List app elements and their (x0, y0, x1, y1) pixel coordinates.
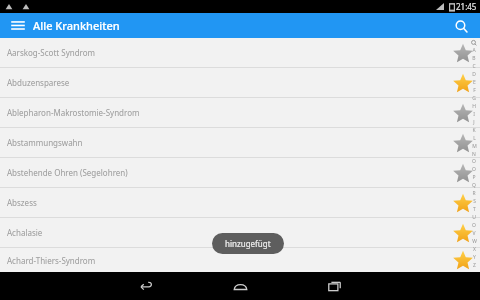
staticText: K (472, 127, 476, 134)
staticText: S (473, 198, 476, 205)
staticText: O (472, 158, 476, 165)
button[interactable]: Favorite (446, 99, 480, 129)
staticText: O (472, 222, 476, 229)
button[interactable]: Abduzensparese (0, 68, 480, 97)
staticText: F (473, 87, 476, 94)
staticText: T (473, 206, 476, 213)
staticText: Abszess (7, 197, 37, 208)
button[interactable]: Favorite (446, 39, 480, 69)
staticText: Ablepharon-Makrostomie-Syndrom (7, 107, 140, 118)
staticText: X (473, 246, 476, 253)
staticText: Abstammungswahn (7, 137, 83, 148)
button[interactable]: Favorite (446, 129, 480, 159)
staticText: J (473, 119, 475, 126)
button[interactable]: Back (121, 272, 171, 300)
staticText: W (472, 238, 477, 245)
button[interactable]: Favorite (446, 69, 480, 99)
button[interactable]: Menu (8, 16, 28, 36)
button[interactable]: Abszess (0, 188, 480, 217)
staticText: E (473, 79, 476, 86)
staticText: R (472, 190, 476, 197)
button[interactable]: Achard-Thiers-Syndrom (0, 248, 480, 272)
staticText: 21:45 (456, 1, 477, 12)
button[interactable]: Search (450, 15, 472, 37)
button[interactable]: Ablepharon-Makrostomie-Syndrom (0, 98, 480, 127)
button[interactable]: Favorite (446, 219, 480, 249)
button[interactable]: Favorite (446, 159, 480, 189)
staticText: Alle Krankheiten (33, 18, 120, 33)
button[interactable]: Favorite (446, 189, 480, 219)
staticText: G (472, 95, 476, 102)
staticText: D (472, 71, 476, 78)
staticText: N (472, 151, 476, 158)
button[interactable]: Abstammungswahn (0, 128, 480, 157)
staticText: hinzugefügt (225, 238, 271, 249)
staticText: H (472, 103, 476, 110)
staticText: Achard-Thiers-Syndrom (7, 255, 96, 266)
staticText: Abstehende Ohren (Segelohren) (7, 167, 128, 178)
button[interactable]: Achalasie (0, 218, 480, 247)
button[interactable]: Recents (309, 272, 359, 300)
staticText: I (473, 111, 475, 118)
staticText: M (472, 143, 477, 150)
staticText: Abduzensparese (7, 77, 70, 88)
staticText: Achalasie (7, 227, 43, 238)
staticText: A (472, 47, 476, 54)
staticText: L (473, 135, 476, 142)
staticText: C (472, 63, 476, 70)
staticText: V (472, 230, 476, 237)
staticText: Q (472, 182, 476, 189)
button[interactable]: Favorite (446, 249, 480, 272)
staticText: O (472, 166, 476, 173)
staticText: Z (473, 262, 476, 269)
button[interactable]: Abstehende Ohren (Segelohren) (0, 158, 480, 187)
button[interactable]: Aarskog-Scott Syndrom (0, 38, 480, 67)
staticText: Y (473, 254, 476, 261)
staticText: Aarskog-Scott Syndrom (7, 47, 96, 58)
button[interactable]: Home (215, 272, 265, 300)
staticText: U (472, 214, 476, 221)
staticText: P (472, 174, 476, 181)
staticText: B (472, 55, 476, 62)
